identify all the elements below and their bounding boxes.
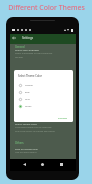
- staticText: Gray: [25, 98, 30, 101]
- button[interactable]: Rate on Google Play: [10, 146, 76, 155]
- button[interactable]: Recents: [57, 160, 65, 168]
- staticText: Customize theme color by selecting one o…: [15, 126, 55, 133]
- button[interactable]: Select App Language: [10, 47, 76, 60]
- staticText: Blue: [25, 91, 30, 94]
- other: Back: [10, 33, 18, 43]
- staticText: Orange: [25, 84, 33, 87]
- staticText: Select App Language: [15, 48, 39, 51]
- staticText: Rate on Google Play: [15, 147, 38, 150]
- button[interactable]: CANCEL: [56, 115, 70, 120]
- staticText: Select Theme Color: [18, 74, 42, 78]
- staticText: Green: [25, 105, 32, 108]
- button[interactable]: Home: [38, 160, 46, 168]
- button[interactable]: Back: [10, 33, 76, 43]
- staticText: Different Color Themes: [8, 3, 85, 13]
- staticText: Settings: [22, 36, 34, 40]
- button[interactable]: Select Theme Color: [10, 121, 76, 134]
- button[interactable]: Green: [14, 103, 73, 110]
- staticText: Like this app? Rate it!: [15, 151, 37, 154]
- staticText: Others: [15, 141, 24, 145]
- staticText: General: [15, 45, 25, 49]
- button[interactable]: Blue: [14, 89, 73, 96]
- staticText: Select a language to use throughout the …: [15, 52, 53, 59]
- button[interactable]: Back: [20, 160, 28, 168]
- staticText: Select Theme Color: [15, 122, 37, 125]
- button[interactable]: Orange: [14, 82, 73, 89]
- button[interactable]: Gray: [14, 96, 73, 103]
- staticText: CANCEL: [58, 116, 68, 119]
